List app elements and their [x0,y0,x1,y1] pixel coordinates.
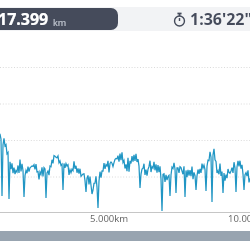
button[interactable]: 17.399 [0,8,118,30]
staticText: km [53,16,67,28]
button[interactable]: Elapsed time [172,8,250,30]
staticText: 1:36'22" [190,8,250,30]
staticText: 5.000km [90,212,129,225]
staticText: 10.000 [228,212,250,225]
staticText: 17.399 [0,8,49,30]
other: Elapsed time [172,12,187,27]
